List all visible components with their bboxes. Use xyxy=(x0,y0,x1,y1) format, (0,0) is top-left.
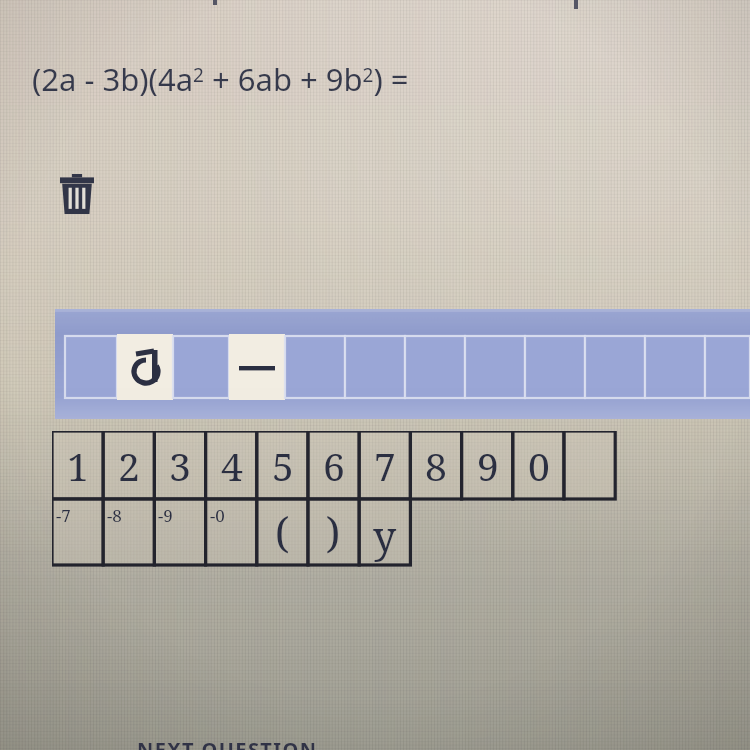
staticText: 0 xyxy=(528,439,550,492)
button[interactable]: Answer slots xyxy=(55,309,750,419)
staticText: NEXT QUESTION xyxy=(137,736,318,750)
button[interactable]: 2 xyxy=(103,431,154,499)
button[interactable]: -8 xyxy=(103,499,154,565)
button[interactable]: 6 xyxy=(308,431,359,499)
button[interactable]: 3 xyxy=(154,431,205,499)
staticText: 3 xyxy=(169,439,191,492)
button[interactable]: 7 xyxy=(359,431,410,499)
staticText: (2a - 3b)(4a2 + 6ab + 9b2) = xyxy=(32,58,409,100)
staticText: 1 xyxy=(67,439,89,492)
staticText: -7 xyxy=(56,504,71,527)
staticText: ( xyxy=(275,504,290,560)
staticText: y xyxy=(373,508,397,564)
button[interactable]: 4 xyxy=(206,431,257,499)
button[interactable]: 0 xyxy=(513,431,564,499)
button[interactable]: ( xyxy=(257,499,308,565)
staticText: 2 xyxy=(118,439,140,492)
staticText: -9 xyxy=(158,504,173,527)
button[interactable]: 8 xyxy=(410,431,461,499)
staticText: -8 xyxy=(107,504,122,527)
button[interactable]: y xyxy=(359,499,410,565)
staticText: 4 xyxy=(221,439,243,492)
staticText: 7 xyxy=(374,439,396,492)
staticText: 9 xyxy=(477,439,499,492)
button[interactable]: -9 xyxy=(154,499,205,565)
staticText: 5 xyxy=(272,439,294,492)
staticText: -0 xyxy=(210,504,225,527)
staticText: ) xyxy=(326,504,341,560)
button[interactable]: Clear answer xyxy=(54,168,100,220)
button[interactable]: ) xyxy=(308,499,359,565)
button[interactable]: 1 xyxy=(52,431,103,499)
button[interactable]: 5 xyxy=(257,431,308,499)
button[interactable]: 9 xyxy=(462,431,513,499)
staticText: 6 xyxy=(323,439,345,492)
button[interactable]: -7 xyxy=(52,499,103,565)
staticText: 8 xyxy=(425,439,447,492)
button[interactable]: -0 xyxy=(206,499,257,565)
button[interactable]: Next question xyxy=(137,736,367,750)
